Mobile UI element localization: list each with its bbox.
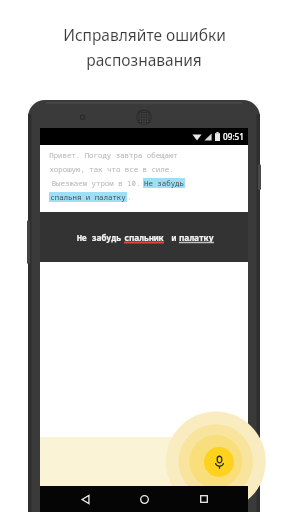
button[interactable]: Recent apps <box>189 486 219 512</box>
staticText: Исправляйте ошибки <box>63 24 226 45</box>
staticText: Привет. Погоду завтра обещают <box>49 150 178 160</box>
staticText: распознавания <box>86 49 202 70</box>
button[interactable]: Voice input <box>204 447 234 477</box>
staticText: Не забудь <box>144 178 184 188</box>
staticText: спальник <box>124 232 164 243</box>
staticText: . <box>127 192 132 202</box>
button[interactable]: Привет. Погоду завтра обещают <box>40 145 248 212</box>
staticText: палатку <box>179 232 214 243</box>
button[interactable]: Не забудь <box>40 212 248 262</box>
staticText: Не забудь <box>74 232 124 243</box>
button[interactable]: Back <box>70 486 100 512</box>
staticText: Выезжаем утром в 10. <box>49 178 143 188</box>
staticText: 09:51 <box>223 131 244 142</box>
staticText: хорошую, так что все в силе. <box>49 164 174 174</box>
staticText: и <box>164 232 179 243</box>
button[interactable]: Home <box>129 486 159 512</box>
staticText: спальня и палатку <box>50 192 126 202</box>
